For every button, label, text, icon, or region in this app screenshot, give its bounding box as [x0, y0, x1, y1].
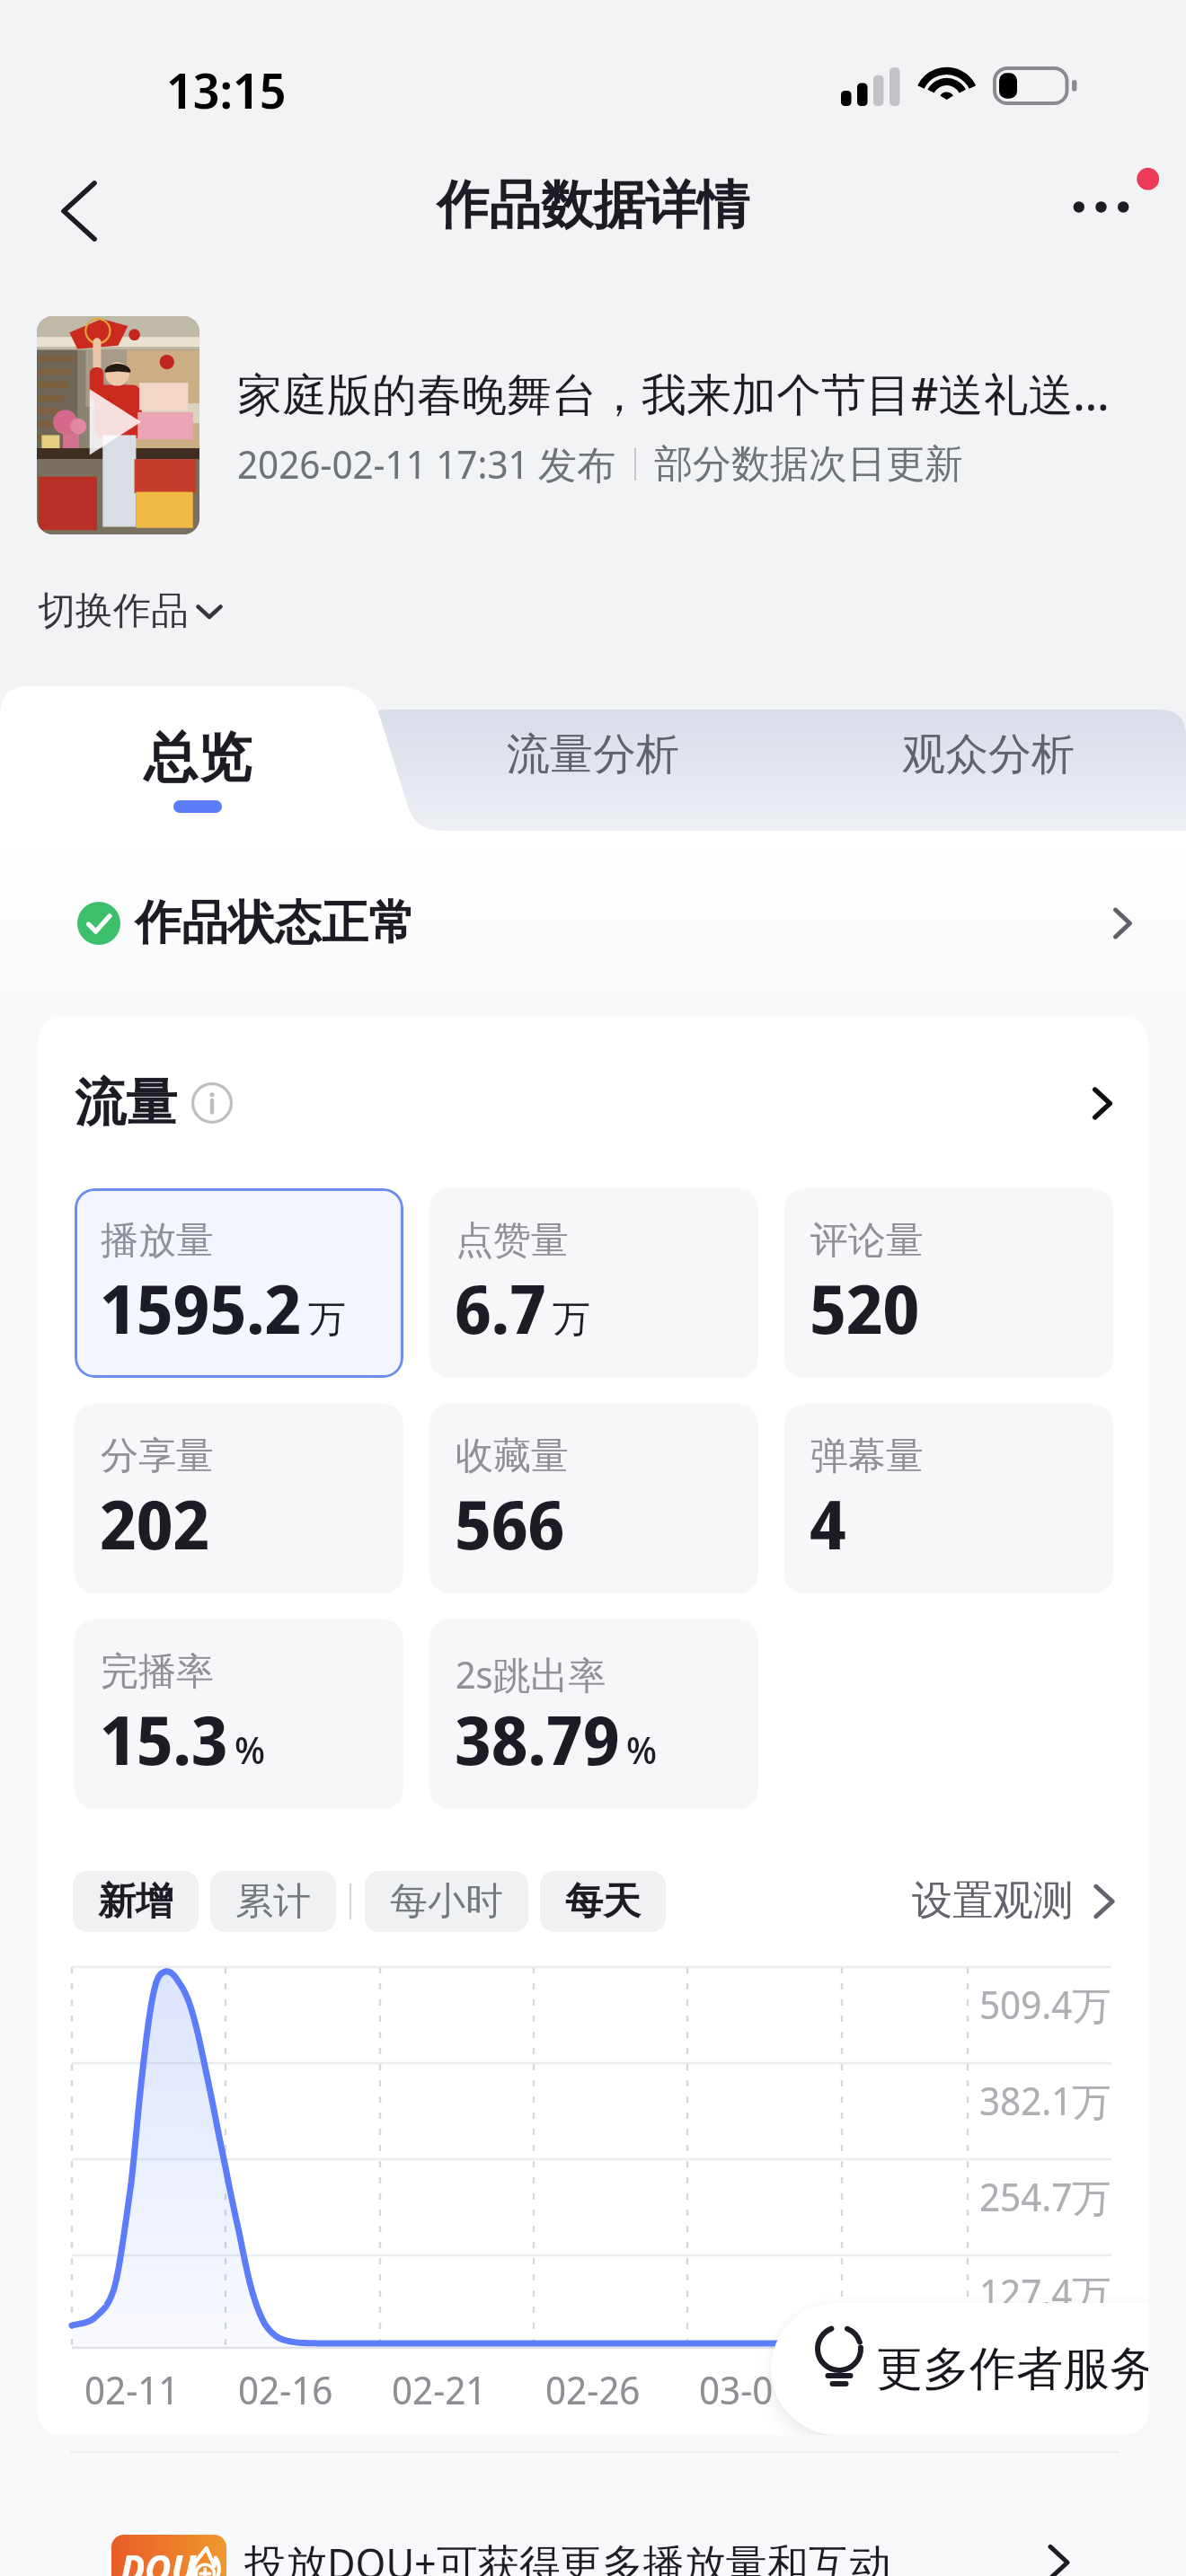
staticText: 6.7	[455, 1262, 546, 1354]
staticText: 更多作者服务	[876, 2340, 1148, 2399]
staticText: 新增	[98, 1878, 173, 1926]
button[interactable]: 累计	[210, 1871, 336, 1932]
staticText: 设置观测	[912, 1875, 1074, 1927]
staticText: 520	[810, 1262, 920, 1354]
button[interactable]: 每天	[540, 1871, 666, 1932]
staticText: 2s跳出率	[456, 1648, 606, 1699]
staticText: 2026-02-11 17:31 发布	[237, 437, 616, 490]
staticText: 家庭版的春晚舞台，我来加个节目#送礼送…	[237, 363, 1145, 424]
staticText: 02-11	[84, 2363, 180, 2416]
button[interactable]: 收藏量	[429, 1404, 758, 1593]
staticText: 弹幕量	[810, 1433, 924, 1480]
button[interactable]: 分享量	[75, 1404, 403, 1593]
staticText: 切换作品	[38, 587, 189, 635]
staticText: 02-16	[238, 2363, 333, 2416]
staticText: 每小时	[390, 1878, 503, 1926]
button[interactable]: 设置观测	[912, 1870, 1115, 1932]
button[interactable]: 弹幕量	[784, 1404, 1113, 1593]
button[interactable]: 作品状态正常	[0, 864, 1186, 983]
staticText: 566	[455, 1478, 565, 1569]
staticText: 15.3	[100, 1693, 228, 1785]
button[interactable]: 点赞量	[429, 1188, 758, 1378]
staticText: 1595.2	[100, 1262, 302, 1354]
button[interactable]: 总览	[0, 719, 395, 832]
button[interactable]: 完播率	[75, 1619, 403, 1809]
staticText: 254.7万	[979, 2170, 1111, 2223]
staticText: %	[235, 1724, 266, 1775]
button[interactable]: 流量	[75, 1071, 1112, 1135]
staticText: 万	[308, 1296, 346, 1344]
staticText: 收藏量	[456, 1433, 569, 1480]
button[interactable]	[0, 686, 395, 831]
staticText: 播放量	[101, 1217, 214, 1265]
staticText: 02-26	[545, 2363, 641, 2416]
staticText: %	[626, 1724, 658, 1775]
staticText: 流量	[75, 1071, 177, 1135]
button[interactable]: 新增	[73, 1871, 199, 1932]
staticText: 评论量	[810, 1217, 924, 1265]
staticText: 点赞量	[456, 1217, 569, 1265]
staticText: 13:15	[166, 56, 287, 123]
button[interactable]: 观众分析	[791, 719, 1186, 832]
button[interactable]: 每小时	[365, 1871, 528, 1932]
button[interactable]: More options	[1057, 154, 1164, 255]
staticText: 总览	[144, 724, 252, 792]
staticText: 部分数据次日更新	[654, 440, 963, 489]
staticText: 38.79	[455, 1693, 620, 1785]
staticText: 4	[810, 1478, 846, 1569]
staticText: 202	[100, 1478, 210, 1569]
button[interactable]: Back	[36, 168, 122, 254]
staticText: 02-21	[392, 2363, 487, 2416]
button[interactable]: 流量分析	[395, 719, 791, 832]
staticText: 完播率	[101, 1648, 214, 1696]
staticText: 累计	[235, 1878, 311, 1926]
staticText: 流量分析	[507, 728, 679, 781]
staticText: 每天	[565, 1878, 641, 1926]
button[interactable]: 切换作品	[34, 582, 226, 640]
button[interactable]: Video thumbnail	[37, 316, 199, 534]
button[interactable]: DOU	[0, 2519, 1186, 2576]
staticText: 投放DOU+可获得更多播放量和互动	[244, 2535, 891, 2576]
staticText: 382.1万	[979, 2074, 1111, 2127]
staticText: 作品数据详情	[437, 172, 749, 238]
staticText: 分享量	[101, 1433, 214, 1480]
button[interactable]: 评论量	[784, 1188, 1113, 1378]
staticText: 127.4万	[979, 2266, 1111, 2319]
staticText: 作品状态正常	[135, 894, 415, 953]
staticText: DOU	[120, 2542, 196, 2576]
staticText: 观众分析	[902, 728, 1075, 781]
staticText: 万	[553, 1296, 590, 1344]
staticText: 509.4万	[979, 1978, 1111, 2031]
button[interactable]: 2s跳出率	[429, 1619, 758, 1809]
button[interactable]: 播放量	[75, 1188, 403, 1378]
button[interactable]: 更多作者服务	[771, 2303, 1148, 2435]
staticText: 03-0	[699, 2363, 774, 2416]
